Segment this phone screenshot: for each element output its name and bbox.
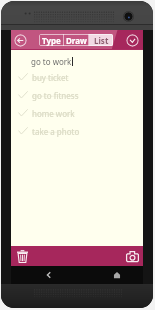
staticText: go to fitness: [32, 90, 79, 101]
button[interactable]: buy ticket: [11, 68, 143, 86]
button[interactable]: Draw: [64, 34, 88, 46]
staticText: List: [94, 35, 109, 46]
staticText: take a photo: [32, 126, 80, 137]
button[interactable]: take a photo: [11, 122, 143, 140]
button[interactable]: home work: [11, 104, 143, 122]
button[interactable]: go to fitness: [11, 86, 143, 104]
button[interactable]: Home: [98, 266, 136, 284]
button[interactable]: Delete: [15, 249, 30, 264]
button[interactable]: Camera: [125, 249, 140, 264]
staticText: Type: [42, 35, 61, 46]
button[interactable]: Done: [126, 34, 139, 47]
button[interactable]: Back: [14, 34, 27, 47]
staticText: go to work: [31, 56, 72, 67]
button[interactable]: List: [89, 34, 113, 46]
button[interactable]: go to work: [11, 54, 143, 68]
button[interactable]: Type: [39, 34, 63, 46]
staticText: home work: [32, 108, 75, 119]
button[interactable]: Back: [30, 266, 68, 284]
staticText: Draw: [66, 35, 87, 46]
staticText: buy ticket: [32, 72, 69, 83]
